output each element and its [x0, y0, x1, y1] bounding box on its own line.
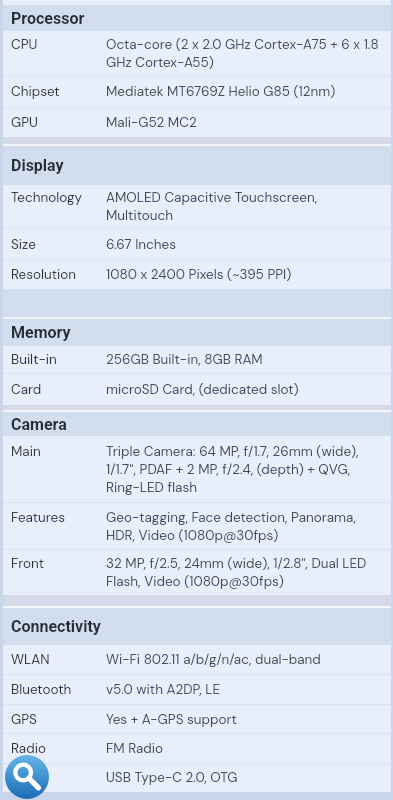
staticText: Camera	[11, 415, 67, 434]
staticText: Chipset	[11, 83, 60, 101]
button[interactable]: CPU	[3, 31, 391, 76]
button[interactable]: Technology	[3, 185, 391, 229]
staticText: microSD Card, (dedicated slot)	[106, 381, 299, 399]
button[interactable]: Connectivity	[3, 608, 391, 645]
staticText: Front	[11, 555, 45, 573]
staticText: Resolution	[11, 266, 77, 284]
staticText: Built-in	[11, 351, 57, 369]
button[interactable]: Chipset	[3, 76, 391, 108]
staticText: Main	[11, 443, 41, 461]
button[interactable]: Radio	[3, 734, 391, 764]
staticText: Wi-Fi 802.11 a/b/g/n/ac, dual-band	[106, 651, 321, 669]
staticText: Card	[11, 381, 42, 399]
staticText: v5.0 with A2DP, LE	[106, 681, 221, 699]
staticText: Triple Camera: 64 MP, f/1.7, 26mm (wide)…	[106, 443, 386, 497]
button[interactable]: GPU	[3, 108, 391, 137]
button[interactable]: WLAN	[3, 645, 391, 675]
button[interactable]: Camera	[3, 412, 391, 436]
staticText: Memory	[11, 323, 71, 342]
staticText: Display	[11, 156, 64, 175]
button[interactable]: USB	[3, 764, 391, 792]
staticText: GPU	[11, 114, 38, 132]
staticText: 1080 x 2400 Pixels (~395 PPI)	[106, 266, 292, 284]
staticText: 32 MP, f/2.5, 24mm (wide), 1/2.8", Dual …	[106, 555, 386, 591]
button[interactable]: Processor	[3, 5, 391, 31]
staticText: 256GB Built-in, 8GB RAM	[106, 351, 263, 369]
staticText: WLAN	[11, 651, 50, 669]
staticText: USB	[11, 769, 36, 787]
button[interactable]: Size	[3, 229, 391, 260]
staticText: Size	[11, 236, 36, 254]
button[interactable]: Main	[3, 436, 391, 503]
staticText: Yes + A-GPS support	[106, 711, 237, 729]
staticText: 6.67 Inches	[106, 236, 176, 254]
staticText: Geo-tagging, Face detection, Panorama, H…	[106, 509, 386, 545]
button[interactable]: Bluetooth	[3, 675, 391, 705]
staticText: Technology	[11, 189, 83, 207]
button[interactable]: Card	[3, 374, 391, 405]
staticText: Bluetooth	[11, 681, 72, 699]
staticText: CPU	[11, 36, 38, 54]
button[interactable]: Resolution	[3, 260, 391, 289]
button[interactable]: Front	[3, 550, 391, 595]
staticText: FM Radio	[106, 740, 164, 758]
staticText: AMOLED Capacitive Touchscreen, Multitouc…	[106, 189, 386, 225]
button[interactable]: Search	[5, 755, 49, 799]
button[interactable]: GPS	[3, 705, 391, 734]
staticText: Mali-G52 MC2	[106, 114, 197, 132]
staticText: GPS	[11, 711, 37, 729]
staticText: Radio	[11, 740, 46, 758]
staticText: Mediatek MT6769Z Helio G85 (12nm)	[106, 83, 336, 101]
button[interactable]: Built-in	[3, 346, 391, 374]
staticText: Processor	[11, 9, 85, 28]
button[interactable]: Display	[3, 146, 391, 185]
staticText: USB Type-C 2.0, OTG	[106, 769, 238, 787]
staticText: Octa-core (2 x 2.0 GHz Cortex-A75 + 6 x …	[106, 36, 386, 72]
staticText: Connectivity	[11, 617, 101, 636]
button[interactable]: Memory	[3, 319, 391, 346]
staticText: Features	[11, 509, 65, 527]
button[interactable]: Features	[3, 503, 391, 550]
